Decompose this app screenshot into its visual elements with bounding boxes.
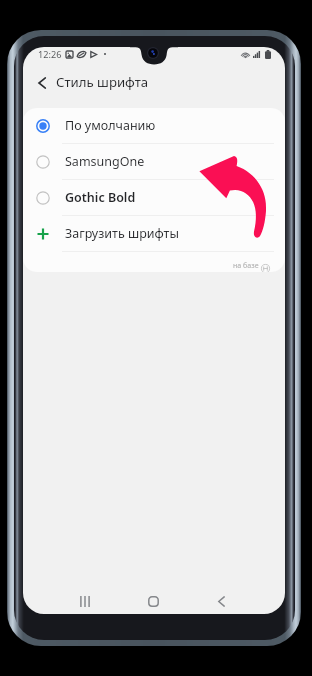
staticText: Загрузить шрифты bbox=[65, 225, 179, 242]
button[interactable]: SamsungOne bbox=[23, 144, 285, 179]
button[interactable]: Back bbox=[29, 70, 55, 96]
staticText: Gothic Bold bbox=[65, 189, 136, 206]
button[interactable]: Back bbox=[204, 584, 239, 614]
staticText: 12:26 bbox=[38, 48, 62, 61]
staticText: SamsungOne bbox=[65, 153, 145, 170]
button[interactable]: Home bbox=[136, 584, 171, 614]
button[interactable]: Gothic Bold bbox=[23, 180, 285, 215]
staticText: на базе bbox=[233, 260, 259, 270]
staticText: По умолчанию bbox=[65, 117, 156, 134]
button[interactable]: По умолчанию bbox=[23, 108, 285, 143]
button[interactable]: Загрузить шрифты bbox=[23, 216, 285, 251]
button[interactable]: Recent apps bbox=[67, 584, 102, 614]
staticText: Стиль шрифта bbox=[56, 73, 149, 91]
